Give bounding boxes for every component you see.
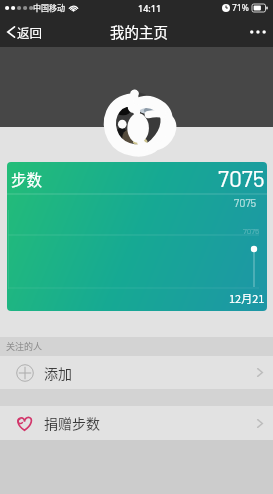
staticText: 中国移动 [33,2,65,14]
staticText: 14:11 [138,2,162,14]
button[interactable]: 步数 [7,162,267,311]
staticText: 步数 [11,168,43,190]
staticText: 关注的人 [6,340,43,353]
staticText: 捐赠步数 [44,413,100,433]
staticText: 7075 [218,164,265,192]
staticText: 添加 [44,363,72,383]
button[interactable]: More options [243,17,273,47]
button[interactable]: 添加 [0,356,273,389]
staticText: 我的主页 [110,21,168,42]
staticText: 7075 [243,226,260,236]
button[interactable]: 捐赠步数 [0,406,273,440]
staticText: 71% [232,2,249,14]
staticText: 12月21 [229,290,265,306]
button[interactable]: 返回 [0,17,51,47]
staticText: 7075 [234,196,257,209]
staticText: 返回 [17,23,43,41]
